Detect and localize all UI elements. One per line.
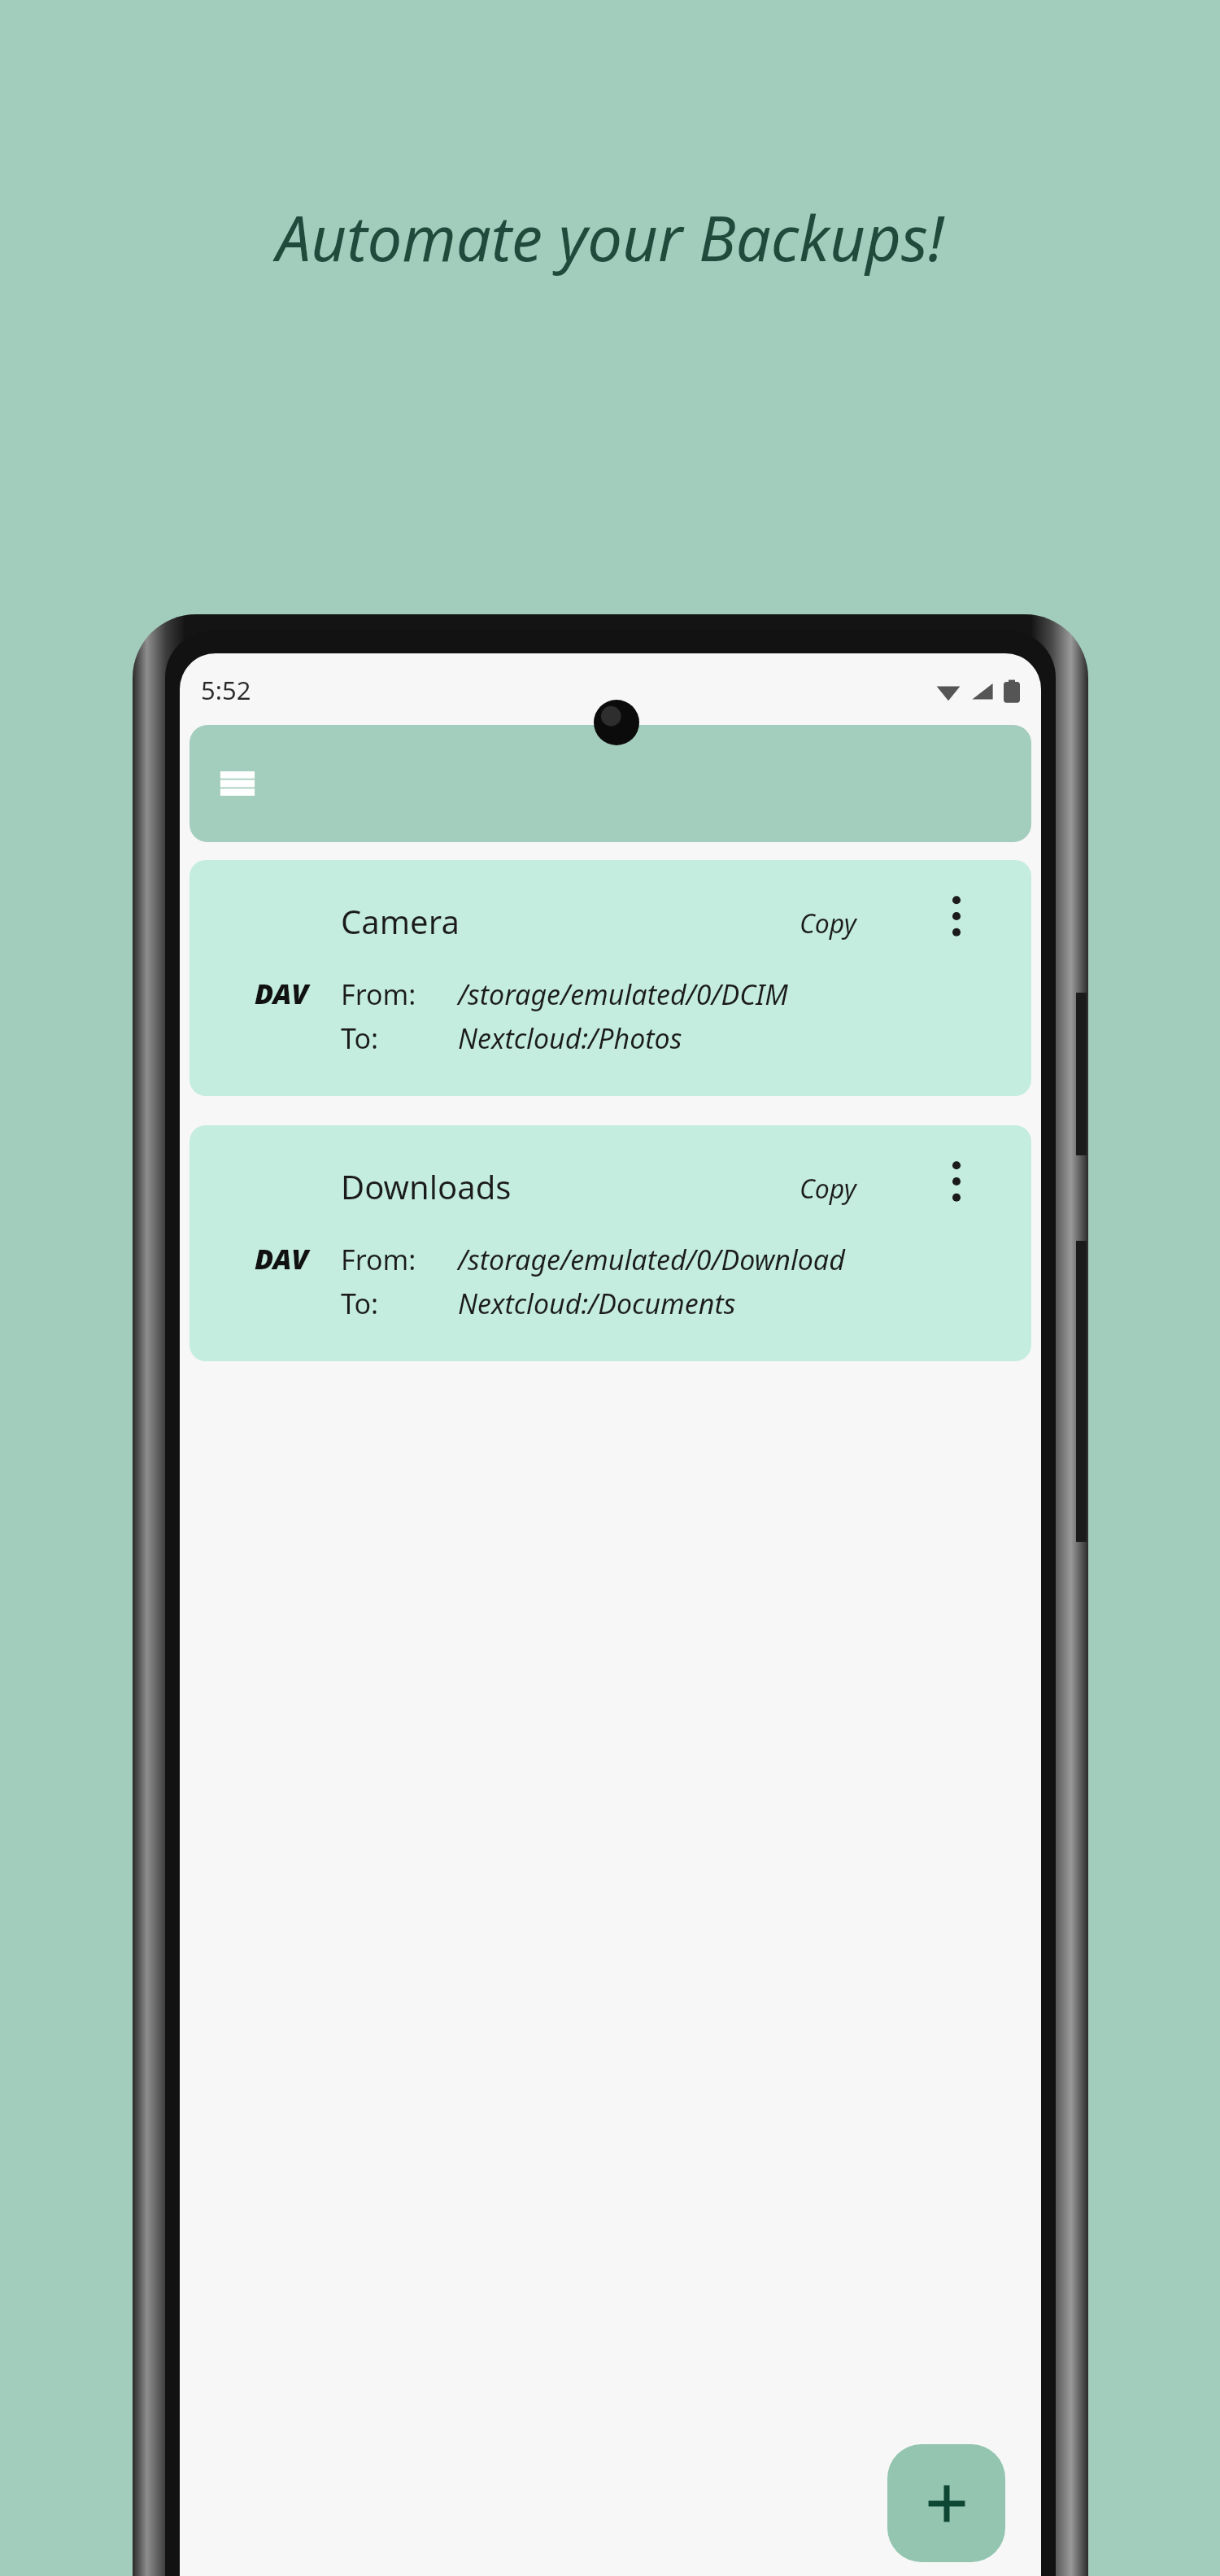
staticText: From: [341,976,416,1013]
staticText: DAV [255,975,309,1012]
button[interactable]: Open navigation menu [190,725,1031,842]
staticText: Copy [800,1171,856,1207]
staticText: Automate your Backups! [0,195,1220,280]
button[interactable]: Camera [190,860,1031,1096]
button[interactable]: Open navigation menu [203,749,272,819]
button[interactable]: More options [922,1146,991,1216]
staticText: 5:52 [201,673,251,707]
staticText: Nextcloud:/Documents [458,1285,736,1322]
staticText: Camera [341,899,460,943]
staticText: /storage/emulated/0/DCIM [458,976,788,1013]
staticText: To: [341,1285,379,1322]
staticText: Copy [800,906,856,941]
staticText: From: [341,1241,416,1278]
staticText: /storage/emulated/0/Download [458,1241,845,1278]
staticText: Downloads [341,1164,512,1208]
button[interactable]: More options [922,881,991,951]
button[interactable]: Downloads [190,1125,1031,1361]
button[interactable]: Add backup [887,2444,1005,2562]
staticText: To: [341,1019,379,1057]
staticText: DAV [255,1240,309,1277]
staticText: Nextcloud:/Photos [458,1019,682,1057]
